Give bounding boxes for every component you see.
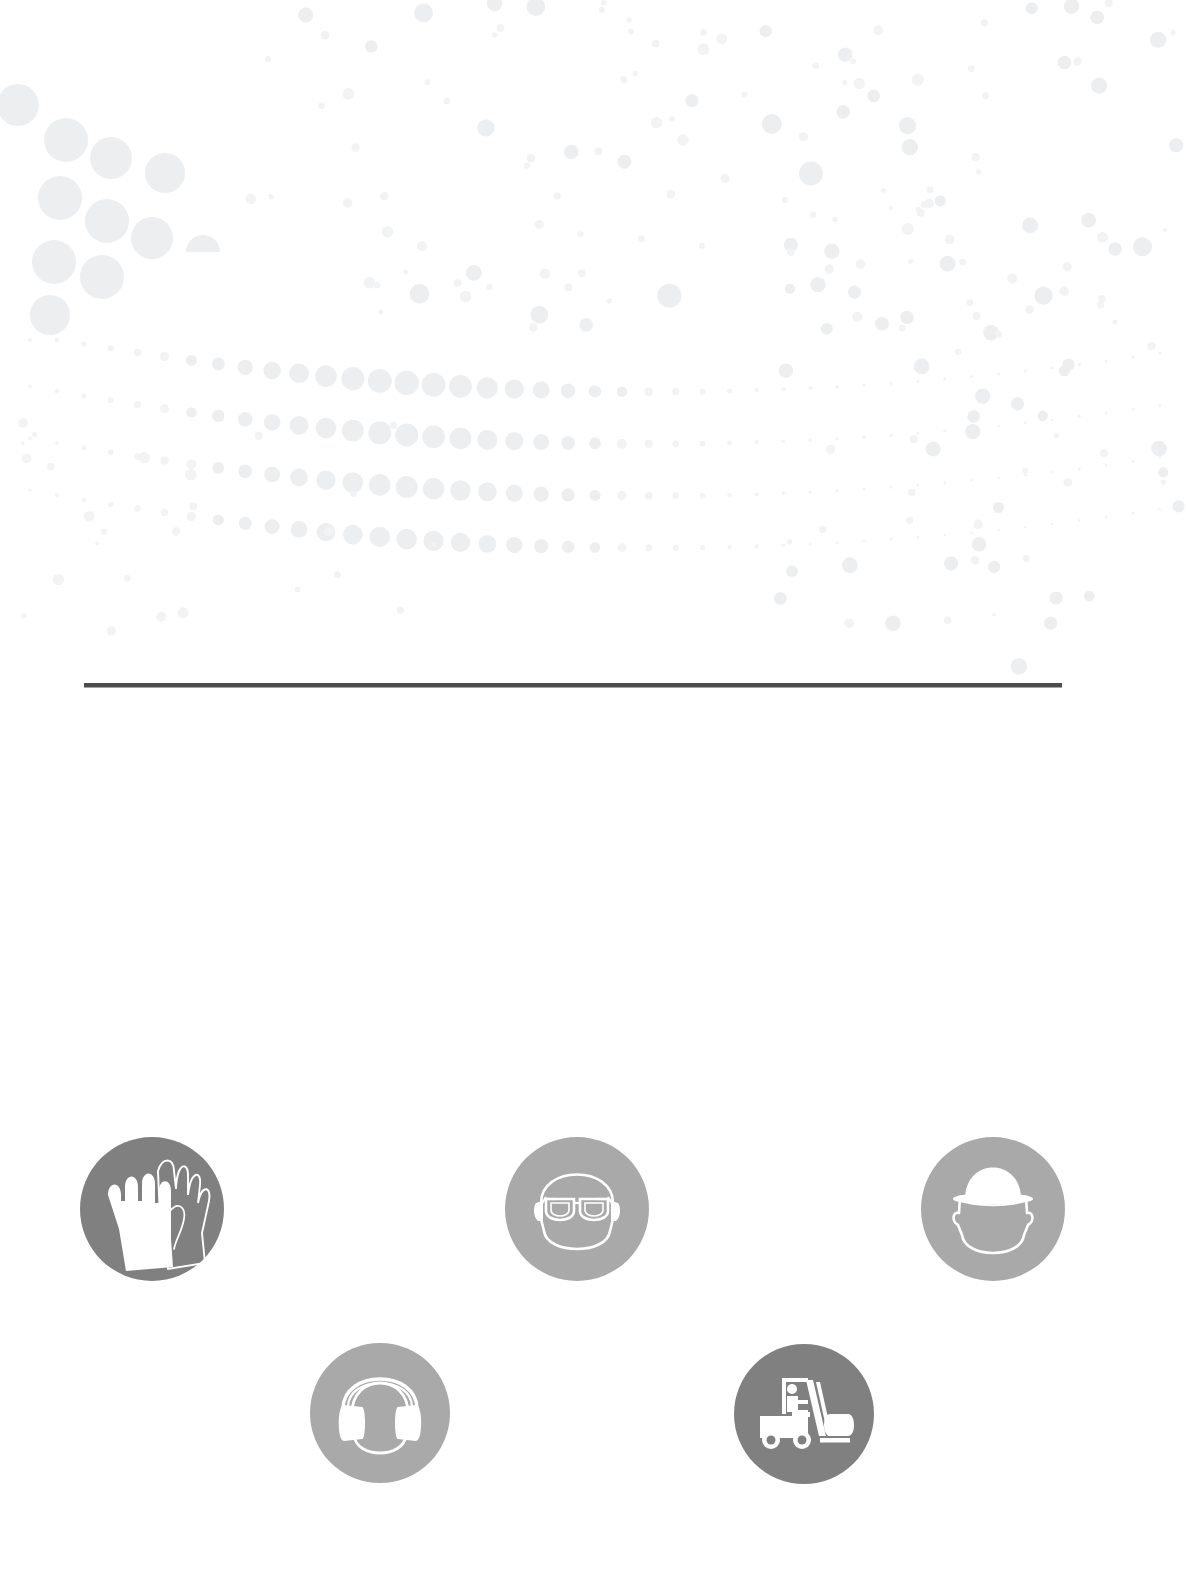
button[interactable]: Wear protective gloves	[0, 0, 1186, 1587]
button[interactable]: Wear head protection	[0, 0, 1186, 1587]
button[interactable]: Wear ear protection	[0, 0, 1186, 1587]
button[interactable]: Forklift traffic	[0, 0, 1186, 1587]
button[interactable]: Wear eye protection	[0, 0, 1186, 1587]
